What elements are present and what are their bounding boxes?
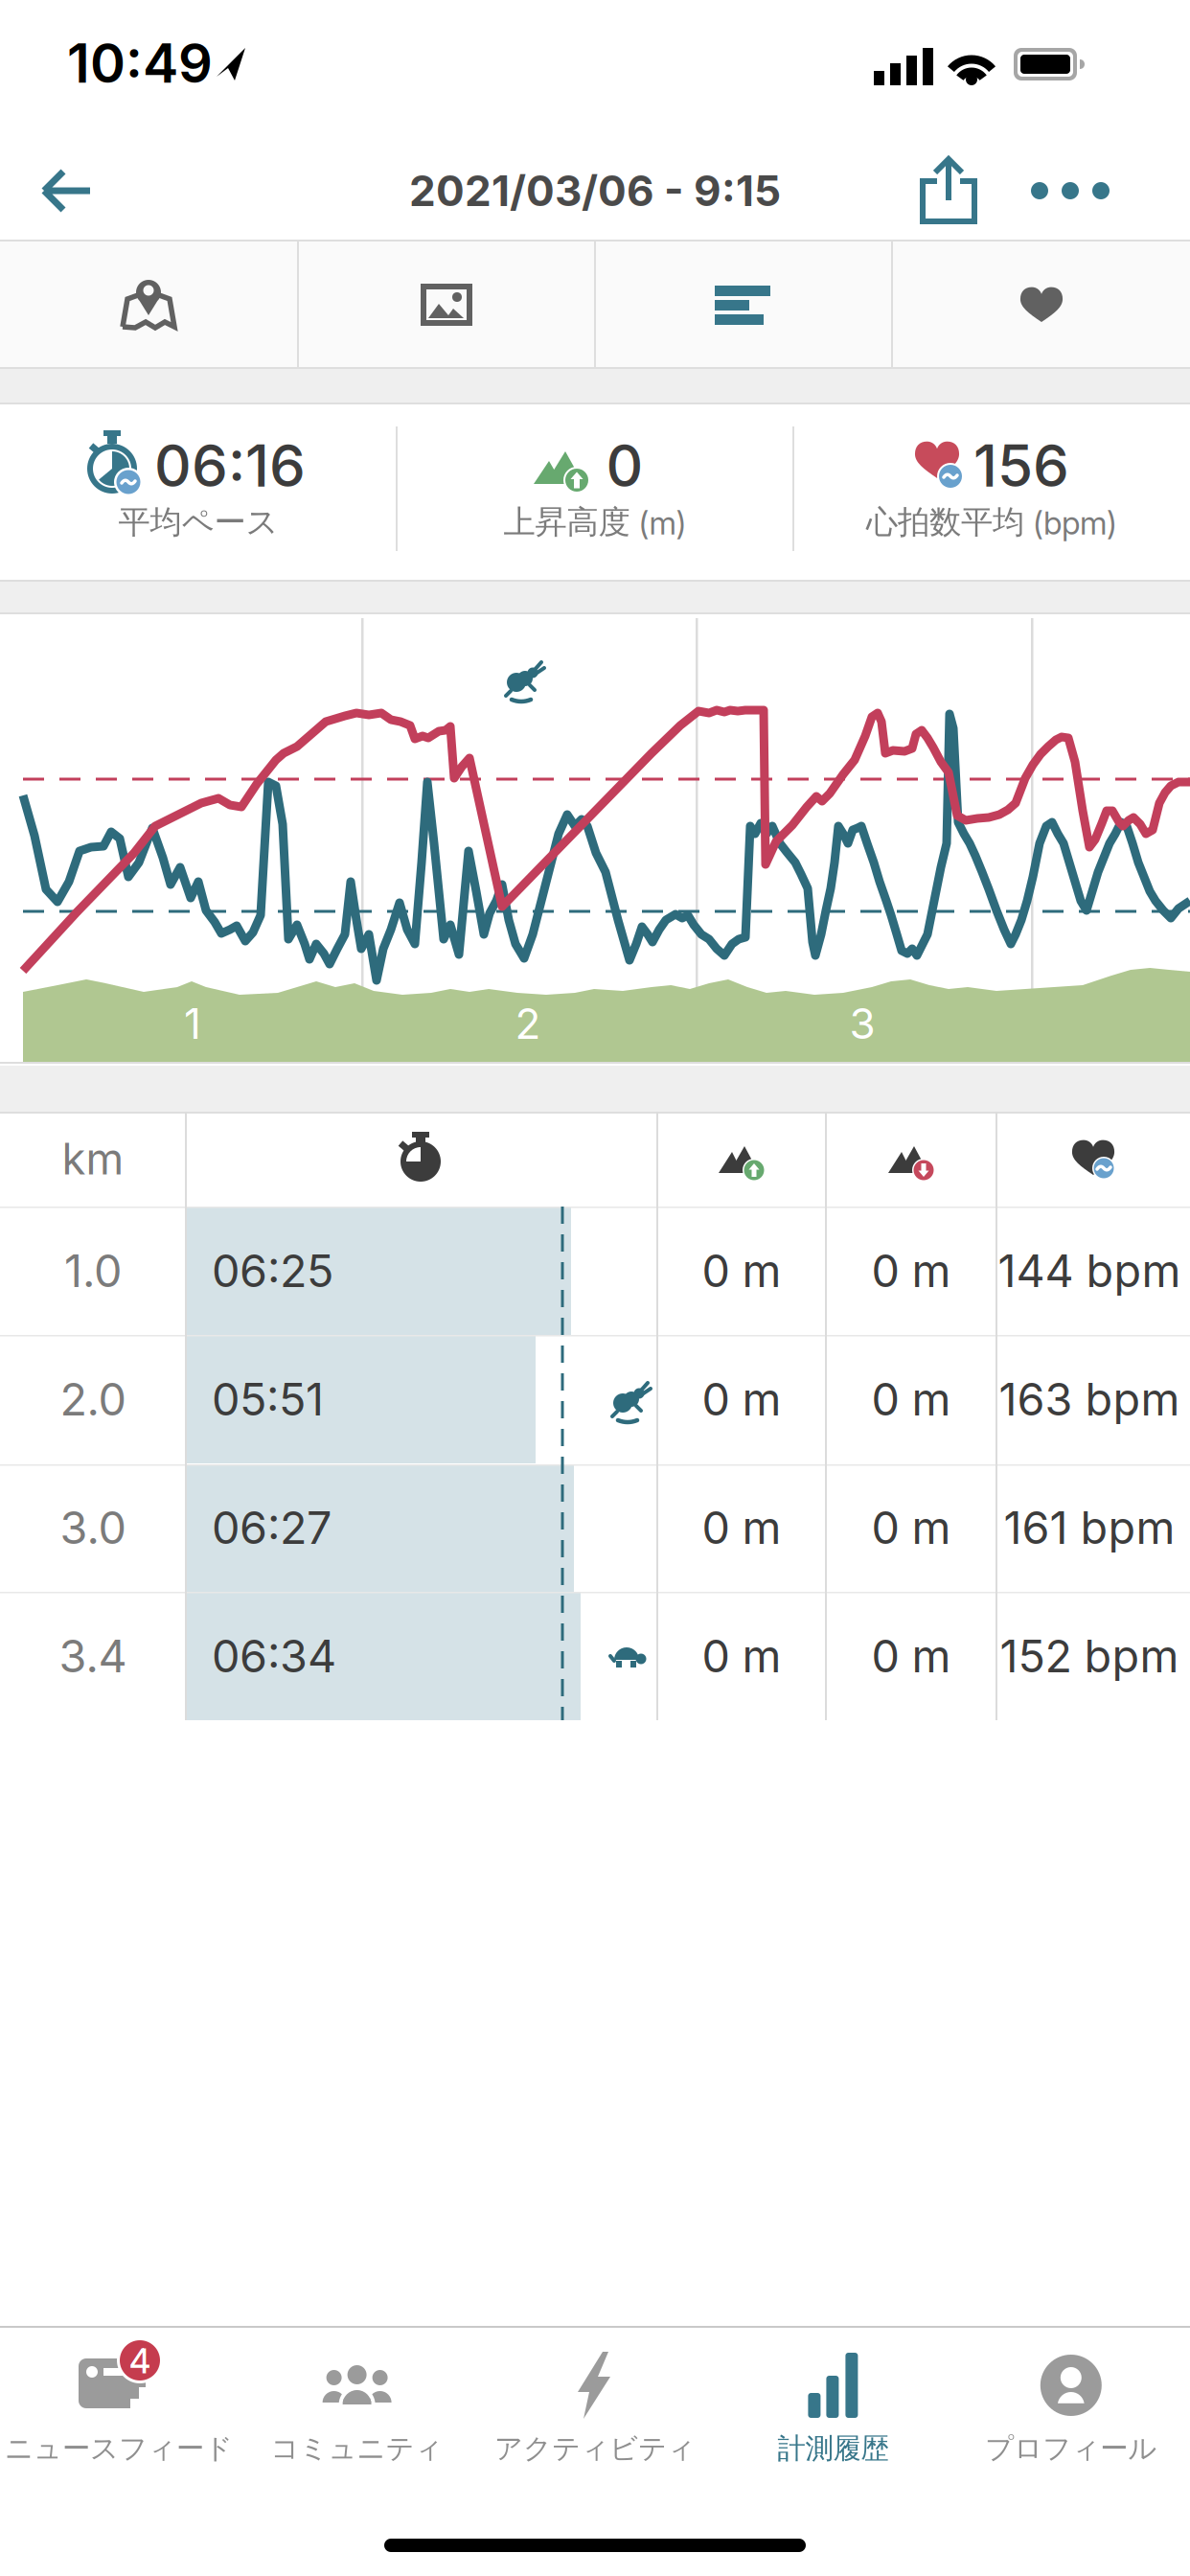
staticText: 0 [606,431,643,501]
staticText: 3.4 [59,1629,127,1683]
button[interactable]: Stats [596,242,891,368]
staticText: 2.0 [60,1372,126,1426]
staticText: 0 m [702,1372,781,1426]
button[interactable]: Photos [299,242,594,368]
staticText: 0 m [871,1501,951,1555]
staticText: コミュニティ [271,2431,443,2466]
staticText: 06:16 [154,431,306,501]
staticText: 06:27 [212,1501,332,1555]
staticText: 1.0 [64,1244,122,1298]
staticText: 0 m [871,1244,951,1298]
button[interactable]: Map [1,242,296,368]
button[interactable]: Like [894,242,1189,368]
button[interactable]: アクティビティ [476,2326,714,2479]
button[interactable]: Back [34,162,103,219]
staticText: 05:51 [212,1372,324,1426]
staticText: 4 [129,2341,150,2381]
button[interactable]: プロフィール [952,2326,1190,2479]
staticText: 0 m [702,1501,781,1555]
staticText: 心拍数平均 (bpm) [866,502,1117,542]
staticText: 2021/03/06 - 9:15 [409,165,781,216]
staticText: 144 bpm [998,1244,1181,1298]
button[interactable]: More [1028,162,1112,219]
staticText: 06:34 [212,1629,336,1683]
button[interactable]: 4 [0,2326,238,2479]
staticText: 0 m [871,1372,951,1426]
staticText: 10:49 [67,31,213,96]
button[interactable]: 計測履歴 [714,2326,952,2479]
staticText: 上昇高度 (m) [503,502,687,542]
staticText: 3 [849,998,875,1049]
staticText: アクティビティ [494,2431,696,2466]
staticText: 0 m [702,1244,781,1298]
staticText: 0 m [702,1629,781,1683]
button[interactable]: Share [918,156,979,225]
staticText: 1 [184,998,201,1049]
staticText: 152 bpm [1000,1629,1179,1683]
staticText: 06:25 [212,1244,333,1298]
staticText: 3.0 [60,1501,126,1555]
staticText: プロフィール [985,2431,1157,2466]
button[interactable]: コミュニティ [238,2326,476,2479]
staticText: ニュースフィード [5,2431,233,2466]
staticText: 161 bpm [1004,1501,1175,1555]
staticText: 2 [515,998,541,1049]
staticText: km [62,1132,124,1185]
staticText: 163 bpm [999,1372,1180,1426]
staticText: 0 m [871,1629,951,1683]
staticText: 平均ペース [118,502,278,542]
staticText: 計測履歴 [777,2431,889,2466]
staticText: 156 [973,431,1069,501]
